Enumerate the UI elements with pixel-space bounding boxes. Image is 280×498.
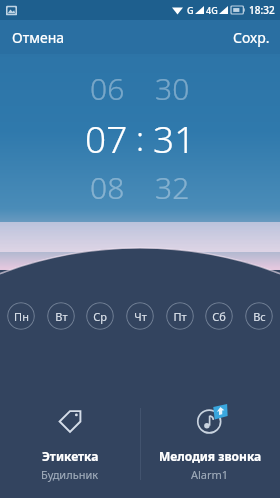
staticText: 18:32 bbox=[249, 3, 275, 17]
staticText: Alarm1 bbox=[191, 467, 229, 482]
staticText: 32 bbox=[155, 167, 190, 208]
button[interactable]: 07 bbox=[85, 113, 128, 163]
button[interactable]: Ср bbox=[86, 302, 114, 330]
staticText: G bbox=[187, 4, 194, 16]
staticText: Будильник bbox=[41, 467, 99, 482]
staticText: Сохр. bbox=[233, 28, 270, 47]
button[interactable]: Пт bbox=[166, 302, 194, 330]
staticText: Этикетка bbox=[42, 448, 99, 464]
button[interactable]: Сб bbox=[205, 302, 233, 330]
staticText: : bbox=[136, 116, 145, 161]
button[interactable]: Чт bbox=[126, 302, 154, 330]
other: Этикетка bbox=[57, 408, 83, 434]
staticText: 30 bbox=[155, 68, 190, 109]
staticText: Вт bbox=[55, 309, 68, 324]
staticText: Мелодия звонка bbox=[159, 448, 262, 464]
staticText: Пн bbox=[14, 309, 29, 324]
button[interactable]: Вт bbox=[47, 302, 75, 330]
staticText: 06 bbox=[90, 68, 125, 109]
button[interactable]: Пн bbox=[7, 302, 35, 330]
staticText: Сб bbox=[212, 309, 226, 324]
button[interactable]: 31 bbox=[153, 113, 196, 163]
button[interactable]: Мелодия звонка bbox=[140, 400, 280, 498]
staticText: 07 bbox=[85, 113, 128, 163]
button[interactable]: Отмена bbox=[0, 22, 77, 53]
button[interactable]: Этикетка bbox=[0, 400, 140, 498]
staticText: 4G bbox=[206, 4, 218, 16]
staticText: 31 bbox=[153, 113, 196, 163]
staticText: 08 bbox=[90, 167, 125, 208]
staticText: Ср bbox=[93, 309, 107, 324]
button[interactable]: Вс bbox=[245, 302, 273, 330]
staticText: Отмена bbox=[12, 28, 65, 47]
other: Мелодия звонка bbox=[197, 408, 223, 434]
staticText: Вс bbox=[253, 309, 266, 324]
staticText: Чт bbox=[134, 309, 147, 324]
button[interactable]: Сохр. bbox=[223, 22, 280, 53]
staticText: Пт bbox=[173, 309, 187, 324]
